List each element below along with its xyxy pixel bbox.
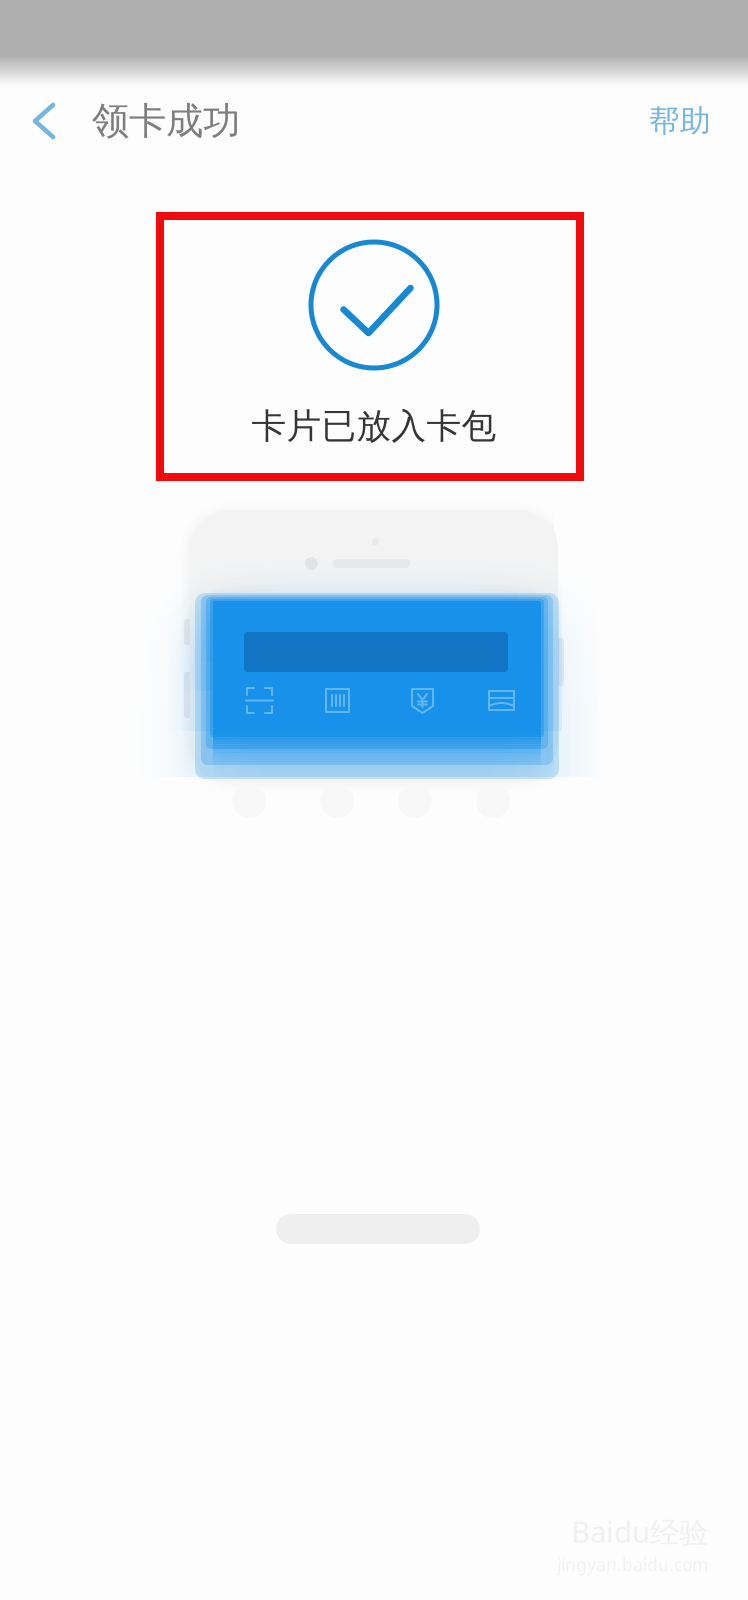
staticText: 卡片已放入卡包 <box>251 405 496 448</box>
staticText: 领卡成功 <box>92 98 240 144</box>
staticText: 帮助 <box>649 102 711 140</box>
staticText: Baidu经验 <box>571 1512 708 1551</box>
button[interactable]: Back <box>0 97 65 145</box>
staticText: jingyan.baidu.com <box>557 1553 708 1576</box>
button[interactable]: 帮助 <box>631 88 748 154</box>
